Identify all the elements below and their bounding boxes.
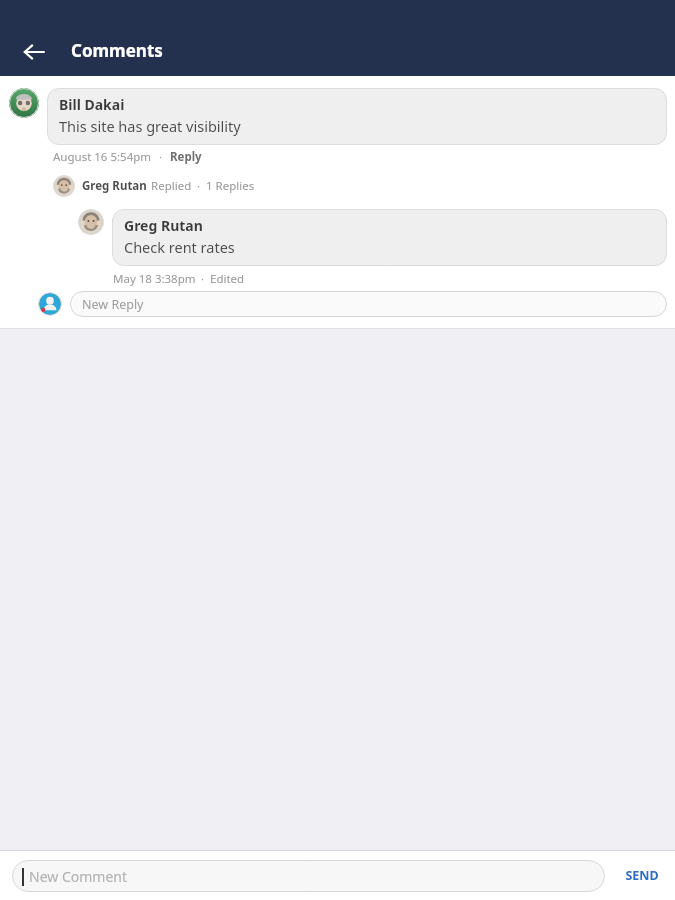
staticText: Replied	[151, 178, 192, 194]
button[interactable]: Back	[12, 30, 56, 74]
staticText: Greg Rutan	[82, 178, 147, 194]
staticText: New Comment	[29, 867, 127, 886]
staticText: May 18 3:38pm	[113, 271, 196, 287]
staticText: Bill Dakai	[59, 95, 125, 114]
staticText: New Reply	[82, 296, 144, 313]
staticText: Comments	[71, 39, 163, 62]
staticText: Check rent rates	[124, 237, 235, 257]
button[interactable]: SEND	[617, 859, 667, 892]
staticText: ·	[201, 271, 205, 287]
staticText: August 16 5:54pm	[53, 149, 152, 165]
button[interactable]: August 16 5:54pm	[53, 149, 202, 165]
staticText: ·	[197, 178, 201, 194]
staticText: 1 Replies	[206, 178, 255, 194]
staticText: Edited	[210, 271, 245, 287]
button[interactable]: New Comment	[12, 860, 605, 892]
button[interactable]: Greg Rutan	[112, 209, 667, 266]
staticText: SEND	[625, 867, 659, 884]
staticText: Greg Rutan	[124, 216, 203, 235]
button[interactable]: May 18 3:38pm	[113, 271, 245, 287]
button[interactable]: Bill Dakai	[47, 88, 667, 145]
staticText: Reply	[170, 149, 202, 165]
staticText: This site has great visibility	[59, 116, 241, 136]
button[interactable]: Greg Rutan	[53, 175, 255, 197]
staticText: ·	[159, 149, 163, 165]
button[interactable]: New Reply	[70, 291, 667, 317]
